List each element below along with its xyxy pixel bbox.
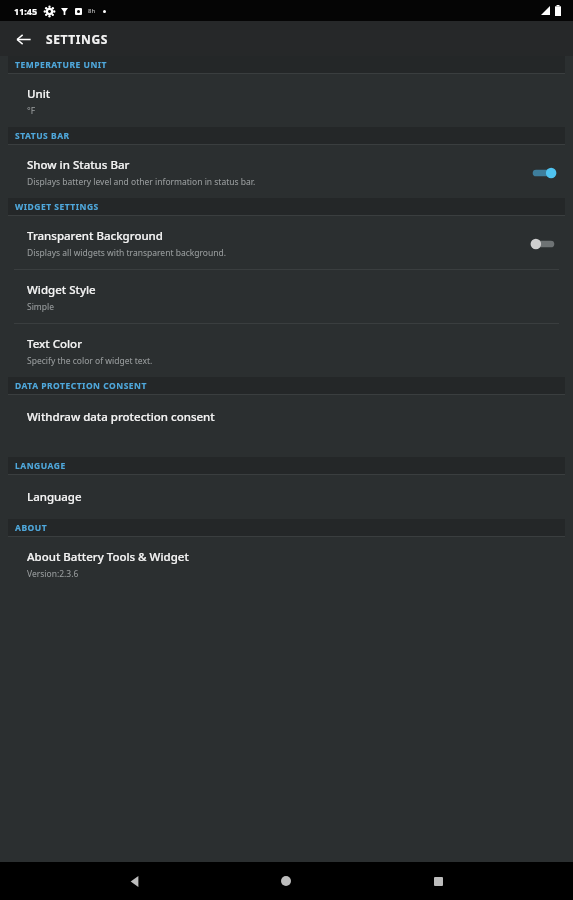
staticText: Language [27, 489, 82, 505]
staticText: Unit [27, 86, 51, 102]
button[interactable]: Unit [0, 74, 573, 127]
button[interactable]: Widget Style [0, 270, 573, 323]
staticText: 11:45 [14, 5, 38, 17]
staticText: Text Color [27, 336, 82, 352]
staticText: LANGUAGE [15, 460, 66, 472]
button[interactable]: About Battery Tools & Widget [0, 537, 573, 590]
staticText: About Battery Tools & Widget [27, 549, 189, 565]
button[interactable]: Show in Status Bar [0, 145, 573, 198]
button[interactable]: Recents [421, 864, 455, 898]
staticText: Transparent Background [27, 228, 163, 244]
staticText: Specify the color of widget text. [27, 355, 153, 367]
button[interactable]: Language [0, 475, 573, 519]
staticText: STATUS BAR [15, 130, 70, 142]
staticText: TEMPERATURE UNIT [15, 59, 108, 71]
button[interactable]: Text Color [0, 324, 573, 377]
staticText: Displays all widgets with transparent ba… [27, 247, 227, 259]
staticText: DATA PROTECTION CONSENT [15, 380, 147, 392]
staticText: WIDGET SETTINGS [15, 201, 99, 213]
staticText: Show in Status Bar [27, 157, 130, 173]
button[interactable]: Toggle off [530, 236, 557, 252]
staticText: ABOUT [15, 522, 48, 534]
staticText: Withdraw data protection consent [27, 409, 215, 425]
button[interactable]: Withdraw data protection consent [0, 395, 573, 439]
button[interactable]: Transparent Background [0, 216, 573, 269]
staticText: 8h [88, 7, 96, 15]
staticText: Simple [27, 301, 55, 313]
staticText: Displays battery level and other informa… [27, 176, 256, 188]
button[interactable]: Back [8, 24, 38, 54]
staticText: °F [27, 105, 36, 117]
button[interactable]: Back [117, 864, 151, 898]
button[interactable]: Toggle on [530, 165, 557, 181]
button[interactable]: Home [269, 864, 303, 898]
staticText: Widget Style [27, 282, 96, 298]
staticText: SETTINGS [46, 31, 108, 47]
staticText: Version:2.3.6 [27, 568, 79, 580]
